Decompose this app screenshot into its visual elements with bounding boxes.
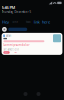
button[interactable]: Hey [2,19,9,25]
staticText: sit amet elit [3,48,19,51]
button[interactable]: Safari [2,33,62,55]
button[interactable]: Camera [36,92,40,96]
staticText: two [26,20,31,24]
staticText: Lorem ipsum dolor [3,43,29,47]
staticText: Hey [2,19,9,25]
staticText: link [34,19,40,25]
staticText: 5:46 PM [2,5,16,10]
staticText: one [12,20,18,24]
button[interactable]: Open [3,51,10,54]
staticText: Open [4,52,8,53]
button[interactable]: Later [13,51,18,54]
button[interactable]: here [42,19,50,25]
staticText: Thursday, December 5 [2,10,32,14]
staticText: Safari [6,34,12,37]
staticText: Later [14,52,18,53]
staticText: here [42,19,50,25]
button[interactable]: link [34,19,40,25]
button[interactable]: Flashlight [23,92,27,96]
